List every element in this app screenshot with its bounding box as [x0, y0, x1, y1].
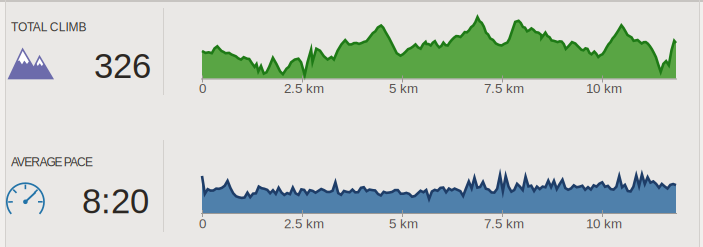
staticText: 5 km — [389, 81, 418, 96]
staticText: 2.5 km — [284, 81, 324, 96]
staticText: 8:20 — [82, 182, 149, 220]
button[interactable]: AVERAGE PACE — [0, 139, 703, 247]
staticText: 2.5 km — [284, 216, 324, 231]
button[interactable]: TOTAL CLIMB — [0, 5, 703, 247]
staticText: TOTAL CLIMB — [11, 20, 86, 34]
staticText: AVERAGE PACE — [11, 155, 93, 169]
staticText: 10 km — [586, 81, 622, 96]
staticText: 0 — [199, 216, 206, 231]
staticText: 7.5 km — [484, 81, 524, 96]
staticText: 10 km — [586, 216, 622, 231]
staticText: 5 km — [389, 216, 418, 231]
staticText: 0 — [199, 81, 206, 96]
staticText: 326 — [94, 47, 151, 85]
staticText: 7.5 km — [484, 216, 524, 231]
